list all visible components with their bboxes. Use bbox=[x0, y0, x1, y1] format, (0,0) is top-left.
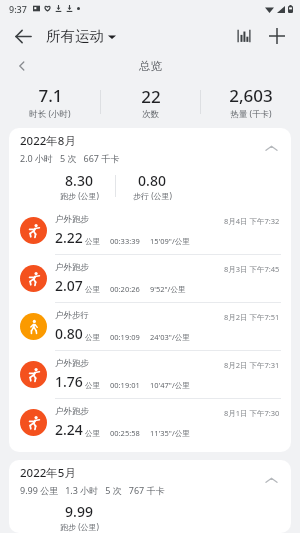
staticText: 11'35"/公里 bbox=[150, 428, 190, 438]
button[interactable]: Add bbox=[260, 19, 294, 53]
button[interactable]: Previous bbox=[12, 56, 32, 76]
staticText: 24'03"/公里 bbox=[150, 332, 190, 342]
staticText: 公里 bbox=[85, 285, 100, 294]
button[interactable]: 户外跑步 bbox=[9, 255, 291, 302]
staticText: 公里 bbox=[85, 429, 100, 438]
staticText: 2.24 bbox=[55, 420, 83, 439]
staticText: 22 bbox=[141, 85, 161, 108]
button[interactable]: Statistics bbox=[228, 20, 260, 52]
staticText: 2,603 bbox=[229, 84, 273, 107]
staticText: 步行 (公里) bbox=[133, 190, 172, 201]
staticText: 9.99 公里 1.3 小时 5 次 767 千卡 bbox=[20, 484, 165, 496]
staticText: 10'47"/公里 bbox=[150, 380, 190, 390]
staticText: 8月2日 下午7:51 bbox=[224, 312, 280, 322]
staticText: 00:19:09 bbox=[110, 332, 140, 342]
staticText: 时长 (小时) bbox=[29, 108, 71, 120]
staticText: 1.76 bbox=[55, 372, 83, 391]
staticText: 2022年5月 bbox=[20, 465, 76, 481]
staticText: 00:25:58 bbox=[110, 428, 140, 438]
staticText: 0.80 bbox=[55, 324, 83, 343]
staticText: 8月1日 下午7:30 bbox=[224, 408, 280, 418]
staticText: 15'09"/公里 bbox=[150, 236, 190, 246]
button[interactable]: 户外跑步 bbox=[9, 351, 291, 398]
staticText: 热量 (千卡) bbox=[230, 108, 272, 120]
button[interactable]: 户外跑步 bbox=[9, 207, 291, 254]
button[interactable]: 所有运动 bbox=[44, 27, 118, 45]
staticText: 跑步 (公里) bbox=[60, 521, 99, 532]
staticText: 所有运动 bbox=[46, 27, 104, 45]
staticText: 2022年8月 bbox=[20, 133, 76, 149]
staticText: 户外步行 bbox=[55, 310, 89, 321]
staticText: 2.0 小时 5 次 667 千卡 bbox=[20, 152, 120, 164]
staticText: 总览 bbox=[139, 59, 162, 73]
staticText: 8.30 bbox=[65, 171, 93, 190]
staticText: 8月4日 下午7:32 bbox=[224, 216, 280, 226]
staticText: 跑步 (公里) bbox=[60, 190, 99, 201]
staticText: 户外跑步 bbox=[55, 214, 89, 225]
staticText: 8月3日 下午7:45 bbox=[224, 264, 280, 274]
staticText: 户外跑步 bbox=[55, 262, 89, 273]
staticText: 公里 bbox=[85, 237, 100, 246]
staticText: 9'52"/公里 bbox=[150, 284, 186, 294]
button[interactable]: 户外跑步 bbox=[9, 399, 291, 446]
staticText: 公里 bbox=[85, 333, 100, 342]
button[interactable]: Back bbox=[6, 19, 40, 53]
staticText: 2.22 bbox=[55, 228, 83, 247]
staticText: 9.99 bbox=[65, 502, 93, 521]
staticText: 00:20:26 bbox=[110, 284, 140, 294]
button[interactable]: 户外步行 bbox=[9, 303, 291, 350]
staticText: 00:19:01 bbox=[110, 380, 140, 390]
staticText: 户外跑步 bbox=[55, 406, 89, 417]
staticText: 00:33:39 bbox=[110, 236, 140, 246]
staticText: 2.07 bbox=[55, 276, 83, 295]
staticText: 8月2日 下午7:31 bbox=[224, 360, 280, 370]
button[interactable]: 2022年8月 bbox=[9, 128, 291, 168]
staticText: 9:37 bbox=[9, 3, 27, 15]
staticText: 次数 bbox=[142, 109, 159, 120]
staticText: 户外跑步 bbox=[55, 358, 89, 369]
staticText: 公里 bbox=[85, 381, 100, 390]
button[interactable]: 2022年5月 bbox=[9, 460, 291, 500]
staticText: 7.1 bbox=[38, 84, 63, 107]
staticText: 0.80 bbox=[138, 171, 166, 190]
